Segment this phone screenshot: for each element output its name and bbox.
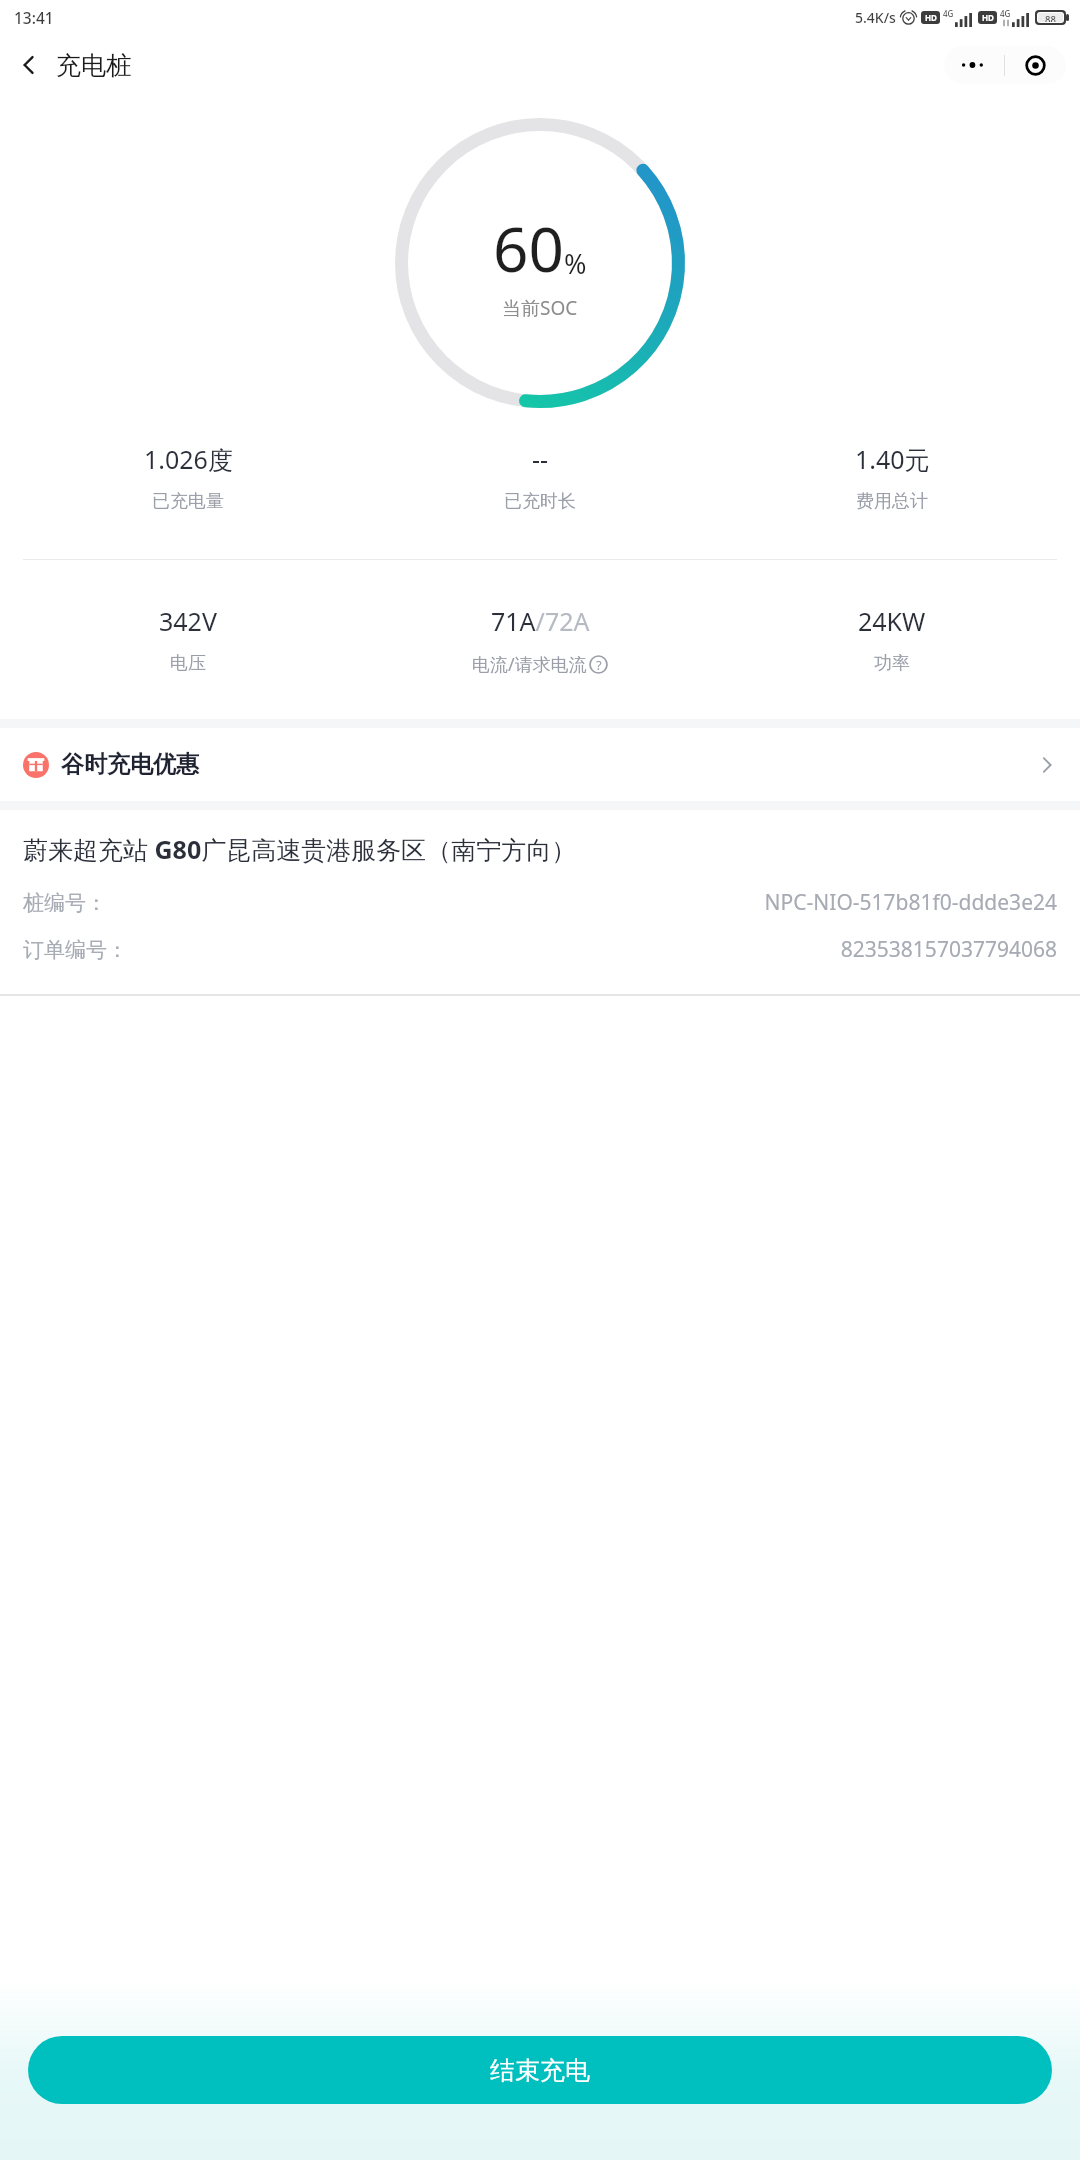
staticText: 4G (943, 8, 954, 19)
staticText: 13:41 (14, 7, 54, 28)
staticText: 823538157037794068 (840, 935, 1057, 964)
staticText: 谷时充电优惠 (61, 750, 199, 779)
staticText: 342V (159, 604, 217, 638)
staticText: 88 (1045, 13, 1056, 22)
staticText: 桩编号： (23, 890, 107, 916)
button[interactable]: 结束充电 (28, 2036, 1052, 2104)
staticText: 订单编号： (23, 937, 128, 963)
staticText: 电流/请求电流 (472, 652, 587, 677)
staticText: 充电桩 (56, 50, 131, 81)
staticText: 24KW (858, 604, 926, 638)
staticText: NPC-NIO-517b81f0-ddde3e24 (764, 888, 1057, 917)
staticText: 1.40元 (855, 442, 930, 476)
staticText: HD (982, 12, 994, 23)
button[interactable]: Menu (944, 46, 1066, 84)
staticText: 功率 (874, 652, 910, 675)
staticText: 5.4K/s (855, 8, 896, 27)
staticText: 费用总计 (856, 490, 928, 513)
staticText: HD (925, 12, 937, 23)
button[interactable]: Help (589, 655, 608, 674)
staticText: 蔚来超充站 G80广昆高速贵港服务区（南宁方向） (23, 832, 577, 866)
staticText: ? (596, 656, 602, 674)
staticText: -- (532, 442, 549, 476)
button[interactable]: 谷时充电优惠 (0, 728, 1080, 801)
button[interactable]: Back (6, 46, 52, 84)
staticText: % (564, 245, 587, 282)
staticText: 电压 (170, 652, 206, 675)
staticText: 1.026度 (144, 442, 233, 476)
staticText: 71A/72A (491, 604, 590, 638)
staticText: 已充时长 (504, 490, 576, 513)
staticText: 已充电量 (152, 490, 224, 513)
staticText: 60 (493, 206, 564, 290)
staticText: 4G (1000, 8, 1011, 19)
staticText: 结束充电 (490, 2055, 590, 2086)
staticText: 当前SOC (502, 295, 578, 321)
